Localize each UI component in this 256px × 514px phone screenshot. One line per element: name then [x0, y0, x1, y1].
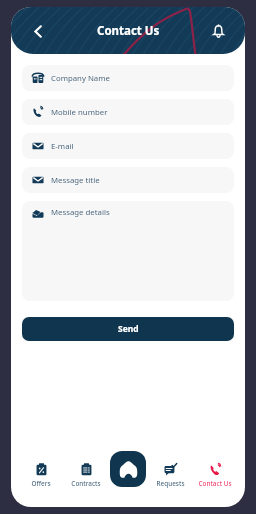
staticText: Offers — [31, 479, 51, 488]
button[interactable]: Mobile number — [22, 99, 234, 125]
staticText: Requests — [156, 479, 185, 488]
button[interactable]: Notifications — [205, 18, 231, 44]
staticText: Message details — [51, 207, 110, 218]
staticText: Contact Us — [198, 479, 232, 488]
staticText: Message title — [51, 175, 100, 186]
button[interactable]: Offers — [20, 460, 62, 491]
staticText: Company Name — [51, 73, 110, 84]
staticText: E-mail — [51, 141, 74, 152]
button[interactable]: Contact Us — [194, 460, 236, 491]
button[interactable]: Send — [22, 317, 234, 341]
button[interactable]: Message title — [22, 167, 234, 193]
button[interactable]: Contracts — [65, 460, 107, 491]
staticText: Contracts — [71, 479, 101, 488]
button[interactable]: Home — [110, 451, 146, 487]
button[interactable]: E-mail — [22, 133, 234, 159]
staticText: Mobile number — [51, 107, 108, 118]
staticText: Contact Us — [97, 23, 160, 39]
button[interactable]: Message details — [22, 201, 234, 301]
button[interactable]: Back — [25, 18, 51, 44]
button[interactable]: Company Name — [22, 65, 234, 91]
button[interactable]: Requests — [149, 460, 191, 491]
staticText: Send — [118, 323, 139, 335]
